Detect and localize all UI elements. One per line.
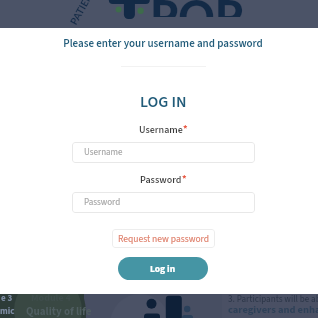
staticText: caregivers and enhanc [228,302,318,317]
staticText: Module 4 [31,294,71,305]
staticText: PATIENT [67,0,98,27]
staticText: * [182,172,187,186]
button[interactable]: e 3 [0,294,318,318]
staticText: Password [140,173,182,187]
staticText: Username [139,123,183,137]
staticText: * [183,122,188,136]
staticText: Password [84,196,121,209]
staticText: Quality of life [26,304,92,318]
staticText: Request new password [118,232,210,246]
button[interactable]: Username [72,142,255,163]
button[interactable]: Log in [118,257,208,280]
button[interactable]: Request new password [112,229,215,248]
staticText: mic [0,305,15,318]
staticText: 3. Participants will be ab [228,294,318,306]
staticText: POP [150,0,243,17]
staticText: LOG IN [140,91,187,114]
staticText: e 3 [1,294,13,305]
staticText: Log in [150,262,176,276]
staticText: Please enter your username and password [63,36,263,52]
staticText: Username [84,146,123,159]
button[interactable]: Password [72,192,255,213]
